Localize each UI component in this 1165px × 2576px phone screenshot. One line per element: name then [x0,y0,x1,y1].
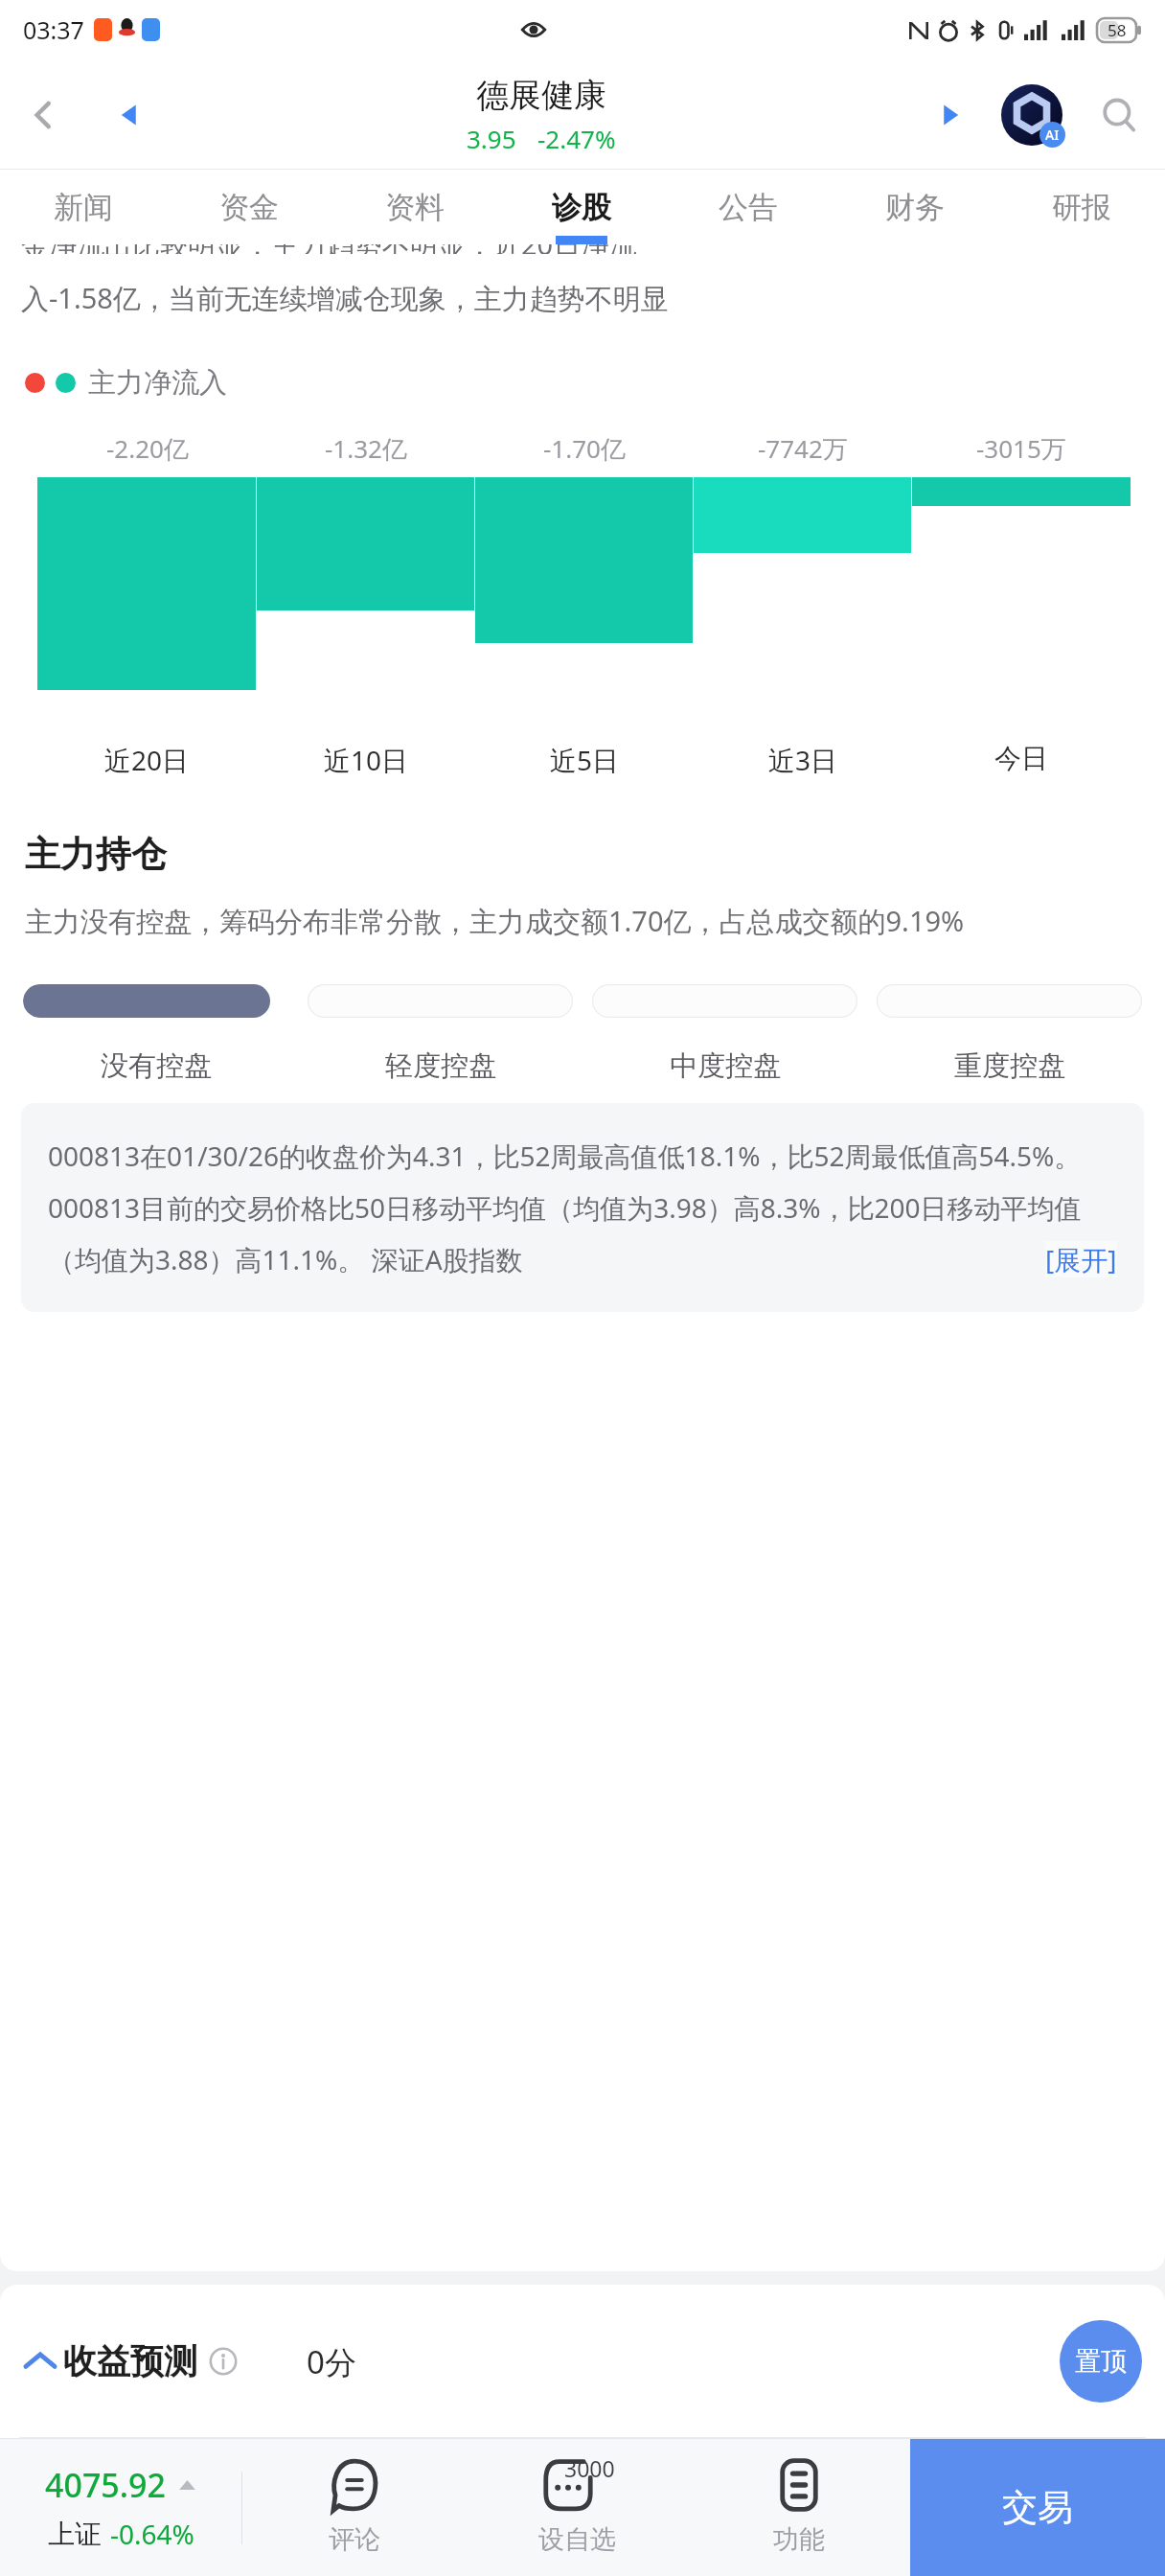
staticText: 收益预测 [63,2340,197,2382]
button[interactable]: 新闻 [0,170,166,244]
button[interactable]: 功能 [688,2439,910,2576]
staticText: [展开] [1045,1241,1117,1277]
staticText: -2.47% [537,122,616,155]
staticText: 近3日 [768,742,838,778]
staticText: 近5日 [550,742,620,778]
staticText: -2.20亿 [106,431,189,466]
button[interactable] [592,984,857,1018]
staticText: 58 [1108,19,1127,41]
staticText: 交易 [1002,2485,1073,2530]
button[interactable]: 收益预测 [23,2340,238,2382]
staticText: 新闻 [54,189,113,226]
staticText: 3000 [564,2453,615,2483]
staticText: -1.70亿 [543,431,626,466]
button[interactable]: Previous stock [86,59,172,170]
staticText: 03:37 [23,13,84,46]
staticText: AI [1045,126,1060,144]
staticText: 中度控盘 [670,1048,781,1084]
staticText: 上证 [48,2518,102,2551]
staticText: 资金 [219,189,279,226]
staticText: 德展健康 [476,75,606,116]
button[interactable]: 3000 [466,2439,688,2576]
button[interactable] [308,984,573,1018]
button[interactable] [877,984,1142,1018]
staticText: 近20日 [104,742,190,778]
staticText: 今日 [994,742,1048,775]
button[interactable]: Back [0,59,86,170]
button[interactable]: [展开] [1045,1241,1117,1277]
staticText: 财务 [885,189,945,226]
staticText: 主力净流入 [88,365,227,401]
staticText: 0分 [307,2340,356,2383]
staticText: -0.64% [110,2516,194,2552]
staticText: 近10日 [324,742,409,778]
button[interactable]: 资料 [331,170,498,244]
staticText: 入-1.58亿，当前无连续增减仓现象，主力趋势不明显 [21,279,669,317]
button[interactable]: AI assistant [991,59,1073,170]
button[interactable]: 资金 [166,170,331,244]
button[interactable]: Search [1073,59,1165,170]
button[interactable] [23,984,288,1018]
staticText: 3.95 [467,122,516,155]
other: Info [209,2347,238,2376]
staticText: -3015万 [976,431,1066,466]
button[interactable]: 公告 [665,170,832,244]
button[interactable]: 交易 [910,2439,1165,2576]
staticText: 主力没有控盘，筹码分布非常分散，主力成交额1.70亿，占总成交额的9.19% [25,902,965,940]
staticText: 评论 [329,2523,380,2556]
staticText: 主力持仓 [25,832,167,877]
staticText: 诊股 [552,189,611,226]
button[interactable]: Next stock [910,59,991,170]
staticText: 公告 [719,189,778,226]
staticText: 置顶 [1075,2345,1127,2378]
staticText: 研报 [1052,189,1111,226]
button[interactable]: 研报 [998,170,1165,244]
staticText: -7742万 [758,431,848,466]
staticText: 资料 [385,189,445,226]
button[interactable]: 4075.92 [0,2439,241,2576]
button[interactable]: 评论 [242,2439,466,2576]
staticText: 轻度控盘 [385,1048,496,1084]
staticText: -1.32亿 [325,431,407,466]
button[interactable]: 置顶 [1060,2320,1142,2403]
staticText: 000813在01/30/26的收盘价为4.31，比52周最高值低18.1%，比… [48,1138,1117,1277]
staticText: 设自选 [538,2523,616,2556]
button[interactable]: 财务 [832,170,998,244]
staticText: 4075.92 [45,2463,166,2507]
staticText: 没有控盘 [101,1048,212,1084]
staticText: 金净流出比较明显，主力趋势不明显，近20日净流 [21,244,637,254]
staticText: 功能 [773,2523,825,2556]
staticText: 重度控盘 [954,1048,1065,1084]
button[interactable]: 诊股 [498,170,665,244]
